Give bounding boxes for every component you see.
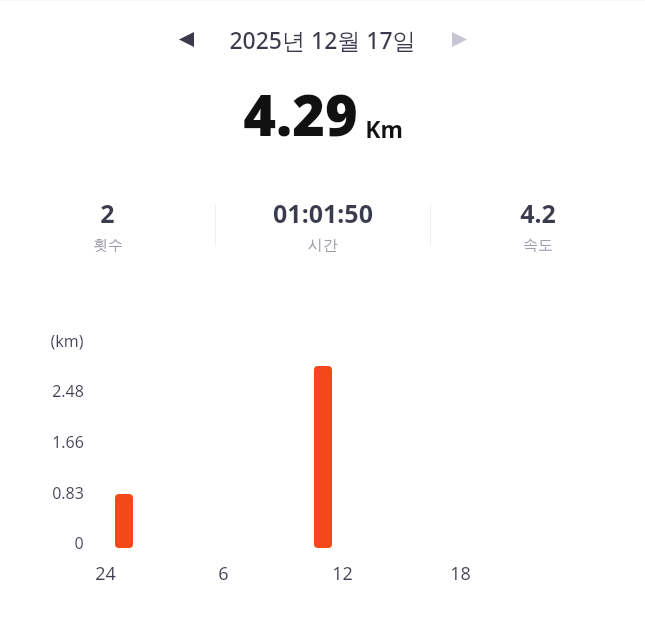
button[interactable]: Previous day: [169, 22, 203, 56]
staticText: 4.2: [520, 196, 556, 230]
staticText: 횟수: [93, 236, 123, 255]
staticText: 시간: [308, 236, 338, 255]
button[interactable]: 4.2: [431, 196, 645, 255]
staticText: 4.29: [243, 76, 358, 152]
staticText: 24: [95, 561, 116, 586]
button[interactable]: 2: [0, 196, 215, 255]
staticText: 2.48: [52, 380, 84, 402]
staticText: 6: [218, 561, 229, 586]
staticText: 2025년 12월 17일: [229, 24, 416, 55]
staticText: 01:01:50: [273, 196, 373, 230]
staticText: 0: [74, 532, 84, 554]
staticText: 0.83: [52, 482, 84, 504]
staticText: 18: [450, 561, 471, 586]
staticText: 12: [332, 561, 353, 586]
staticText: 속도: [523, 236, 553, 255]
staticText: (km): [50, 330, 84, 352]
staticText: 2: [100, 196, 115, 230]
button[interactable]: Next day: [442, 22, 476, 56]
staticText: Km: [365, 113, 403, 144]
button[interactable]: 01:01:50: [216, 196, 430, 255]
staticText: 1.66: [52, 431, 84, 453]
